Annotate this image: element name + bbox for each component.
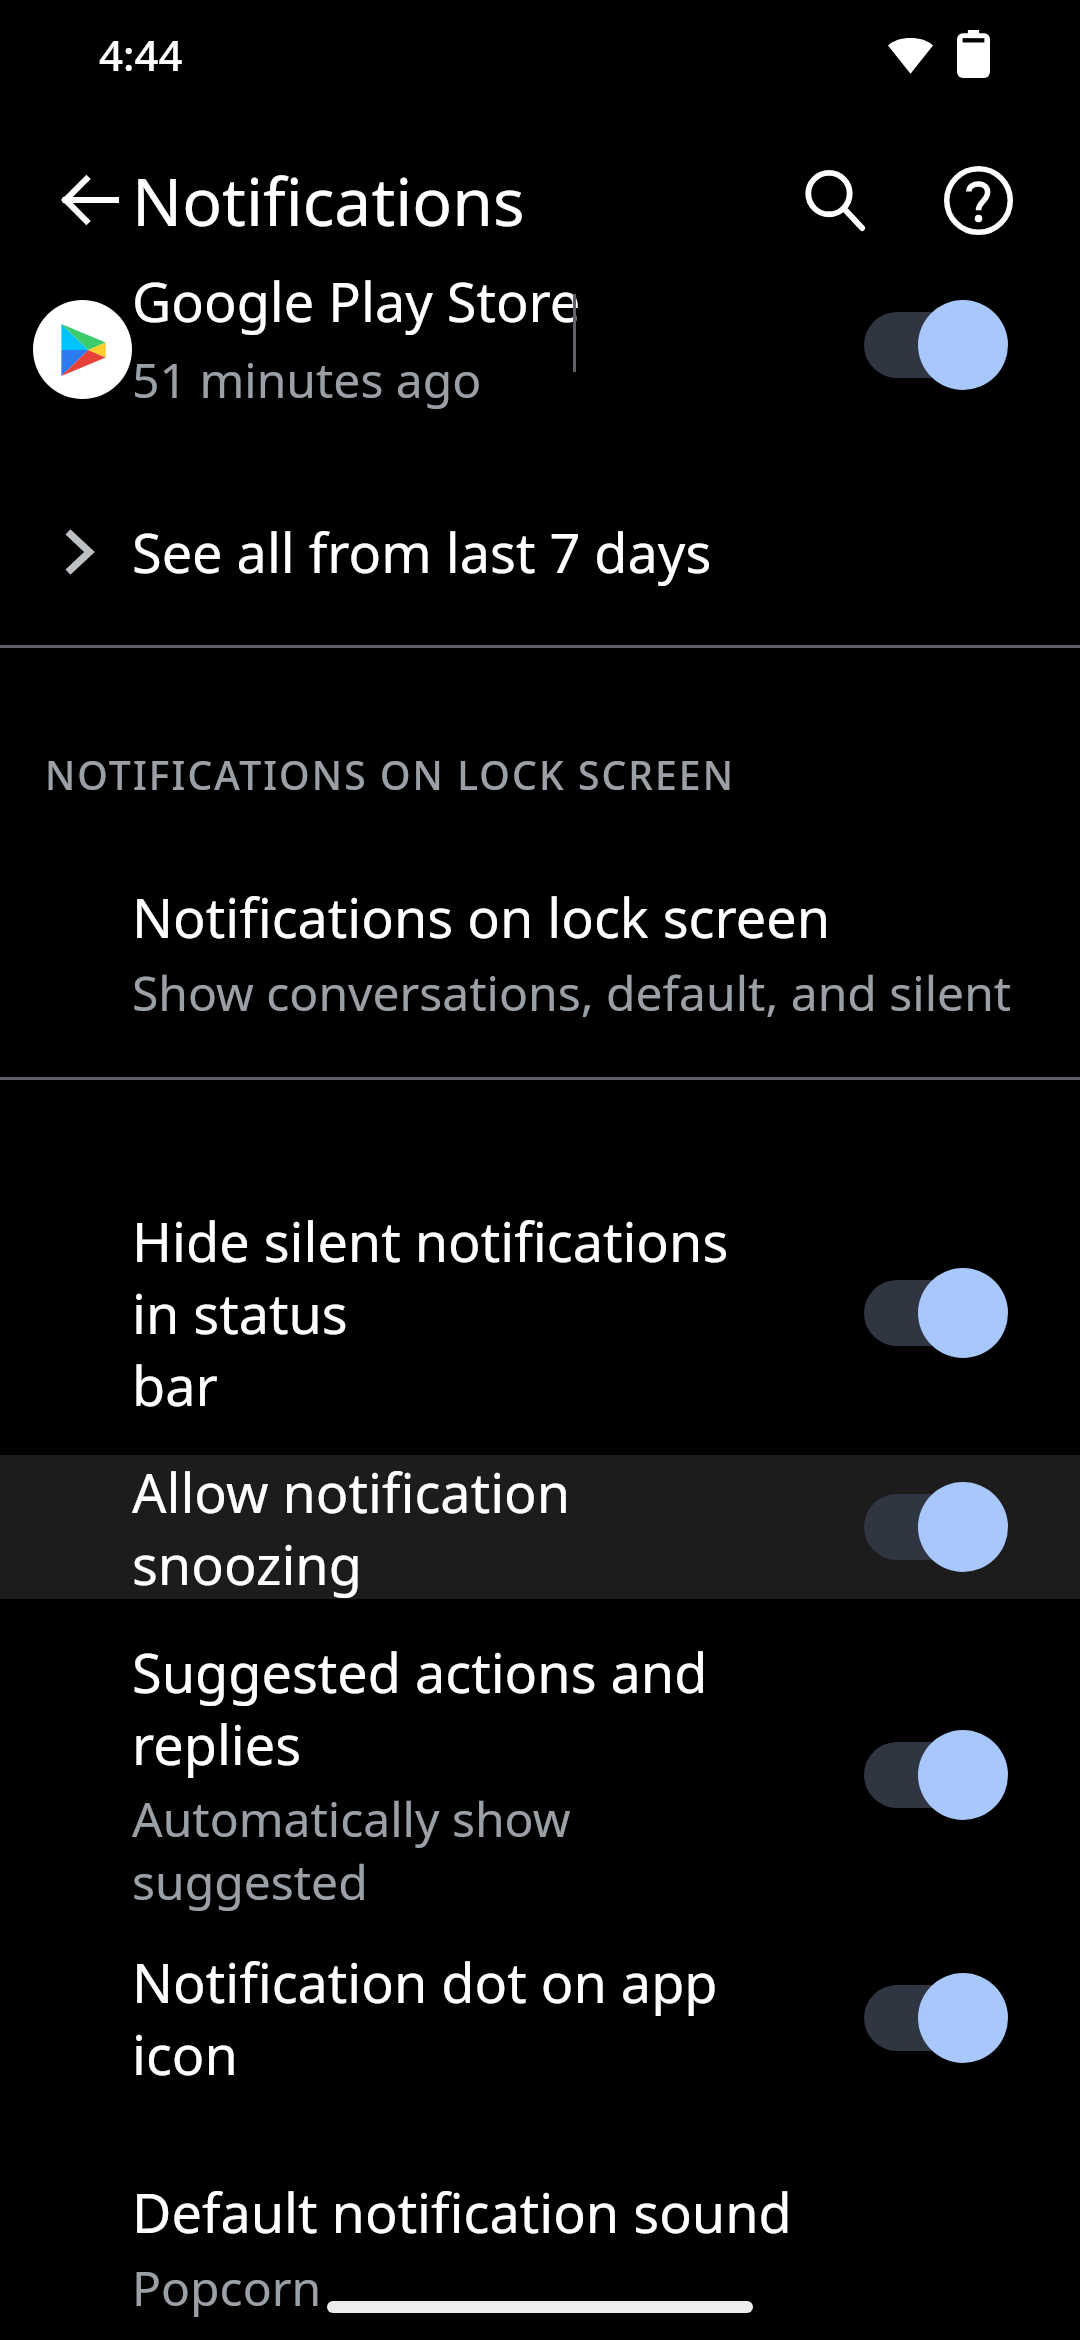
button[interactable]: Back xyxy=(18,128,162,272)
staticText: Allow notification snoozing xyxy=(132,1455,732,1599)
button[interactable]: Search xyxy=(762,128,906,272)
staticText: Notification dot on app icon xyxy=(132,1945,732,2090)
button[interactable]: Allow notification snoozing xyxy=(858,1479,1014,1575)
button[interactable]: Google Play Store xyxy=(0,291,1080,459)
staticText: Popcorn xyxy=(132,2255,322,2320)
staticText: 51 minutes ago xyxy=(132,347,482,412)
staticText: NOTIFICATIONS ON LOCK SCREEN xyxy=(45,748,736,801)
staticText: Google Play Store xyxy=(132,264,581,338)
button[interactable]: Suggested actions and replies xyxy=(0,1635,1080,1914)
staticText: Suggested actions and replies xyxy=(132,1635,732,1780)
button[interactable]: Help xyxy=(906,128,1050,272)
staticText: 4:44 xyxy=(99,26,183,83)
button[interactable]: Toggle Google Play Store notifications xyxy=(858,297,1014,393)
staticText: Hide silent notifications in status bar xyxy=(132,1204,732,1421)
button[interactable]: Suggested actions and replies xyxy=(858,1727,1014,1823)
button[interactable]: Notification dot on app icon xyxy=(0,1944,1080,2091)
staticText: Notifications on lock screen xyxy=(132,880,831,954)
button[interactable]: See all from last 7 days xyxy=(0,459,1080,645)
staticText: See all from last 7 days xyxy=(132,515,712,589)
button[interactable]: Notification dot on app icon xyxy=(858,1970,1014,2066)
staticText: Default notification sound xyxy=(132,2175,792,2249)
button[interactable]: Allow notification snoozing xyxy=(0,1455,1080,1599)
button[interactable]: Hide silent notifications in status bar xyxy=(858,1265,1014,1361)
button[interactable]: Hide silent notifications in status bar xyxy=(0,1170,1080,1455)
button[interactable]: Default notification sound xyxy=(0,2163,1080,2332)
staticText: Automatically show suggested actions & r… xyxy=(132,1786,732,1914)
staticText: Notifications xyxy=(132,155,525,245)
button[interactable]: Notifications on lock screen xyxy=(0,828,1080,1077)
staticText: Show conversations, default, and silent xyxy=(132,960,1012,1025)
